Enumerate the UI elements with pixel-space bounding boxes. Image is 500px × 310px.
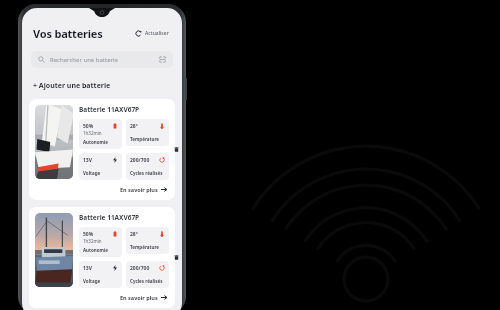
staticText: Cycles réalisés — [130, 170, 163, 176]
button[interactable]: Rechercher une batterie — [31, 51, 173, 68]
staticText: Voltage — [83, 170, 101, 176]
staticText: 200/700 — [130, 157, 150, 164]
staticText: Vos batteries — [33, 26, 103, 41]
button[interactable]: 28° — [126, 227, 169, 254]
button[interactable]: Actualiser — [133, 28, 171, 39]
staticText: Cycles réalisés — [130, 278, 163, 284]
staticText: En savoir plus — [120, 186, 158, 193]
staticText: Autonomie — [83, 139, 108, 145]
staticText: 1h32min — [83, 130, 102, 136]
button[interactable]: Batterie 11AXV67P — [29, 207, 175, 308]
staticText: 13V — [83, 157, 92, 164]
staticText: 50% — [83, 123, 94, 130]
staticText: 50% — [83, 231, 94, 238]
button[interactable]: En savoir plus — [118, 185, 169, 194]
staticText: Actualiser — [145, 30, 169, 37]
button[interactable]: 50% — [79, 119, 122, 149]
button[interactable]: 13V — [79, 261, 122, 288]
staticText: Batterie 11AXV67P — [79, 213, 140, 222]
staticText: 28° — [130, 123, 138, 130]
staticText: 1h32min — [83, 238, 102, 244]
button[interactable]: 13V — [79, 153, 122, 180]
staticText: Rechercher une batterie — [50, 56, 118, 64]
staticText: Voltage — [83, 278, 101, 284]
button[interactable]: Batterie 11AXV67P — [29, 99, 175, 200]
button[interactable]: 28° — [126, 119, 169, 146]
button[interactable]: En savoir plus — [118, 293, 169, 302]
button[interactable]: + Ajouter une batterie — [32, 80, 112, 92]
staticText: 13V — [83, 265, 92, 272]
button[interactable]: 200/700 — [126, 153, 169, 180]
staticText: En savoir plus — [120, 294, 158, 301]
staticText: Température — [130, 136, 159, 142]
button[interactable]: Supprimer la batterie — [172, 145, 181, 154]
button[interactable]: 50% — [79, 227, 122, 257]
button[interactable]: Supprimer la batterie — [172, 253, 181, 262]
staticText: Autonomie — [83, 247, 108, 253]
button[interactable]: 200/700 — [126, 261, 169, 288]
staticText: Batterie 11AXV67P — [79, 105, 140, 114]
staticText: 200/700 — [130, 265, 150, 272]
staticText: 28° — [130, 231, 138, 238]
staticText: Température — [130, 244, 159, 250]
staticText: + Ajouter une batterie — [33, 81, 111, 91]
